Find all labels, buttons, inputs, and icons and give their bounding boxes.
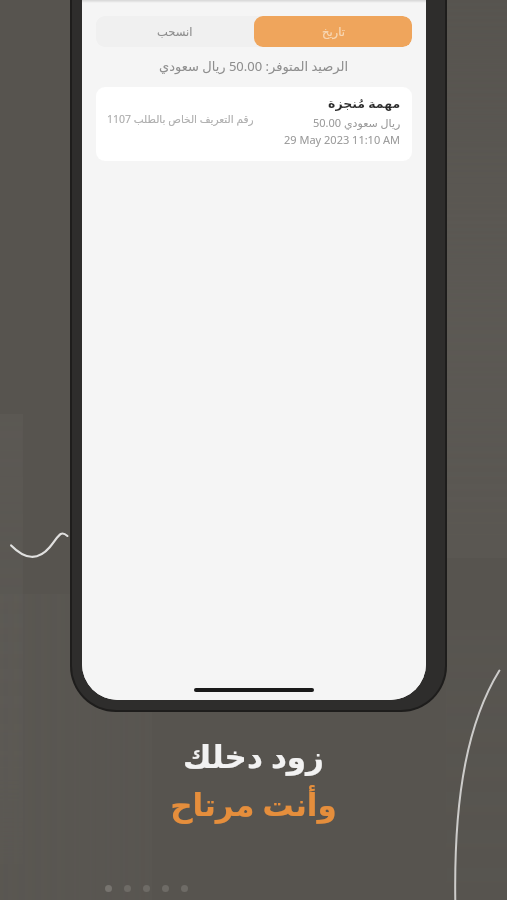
staticText: الرصيد المتوفر: 50.00 ريال سعودي <box>159 57 349 75</box>
staticText: وأنت مرتاح <box>170 783 337 825</box>
staticText: مهمة مُنجزة <box>328 95 401 112</box>
staticText: رقم التعريف الخاص بالطلب 1107 <box>107 112 254 126</box>
button[interactable]: تاريخ <box>254 16 412 47</box>
staticText: تاريخ <box>322 25 345 38</box>
button[interactable]: مهمة مُنجزة <box>96 87 412 161</box>
staticText: انسحب <box>157 25 193 38</box>
staticText: 29 May 2023 11:10 AM <box>284 132 401 147</box>
button[interactable]: انسحب <box>96 16 254 47</box>
staticText: ريال سعودي 50.00 <box>313 115 401 130</box>
staticText: زود دخلك <box>183 735 324 777</box>
